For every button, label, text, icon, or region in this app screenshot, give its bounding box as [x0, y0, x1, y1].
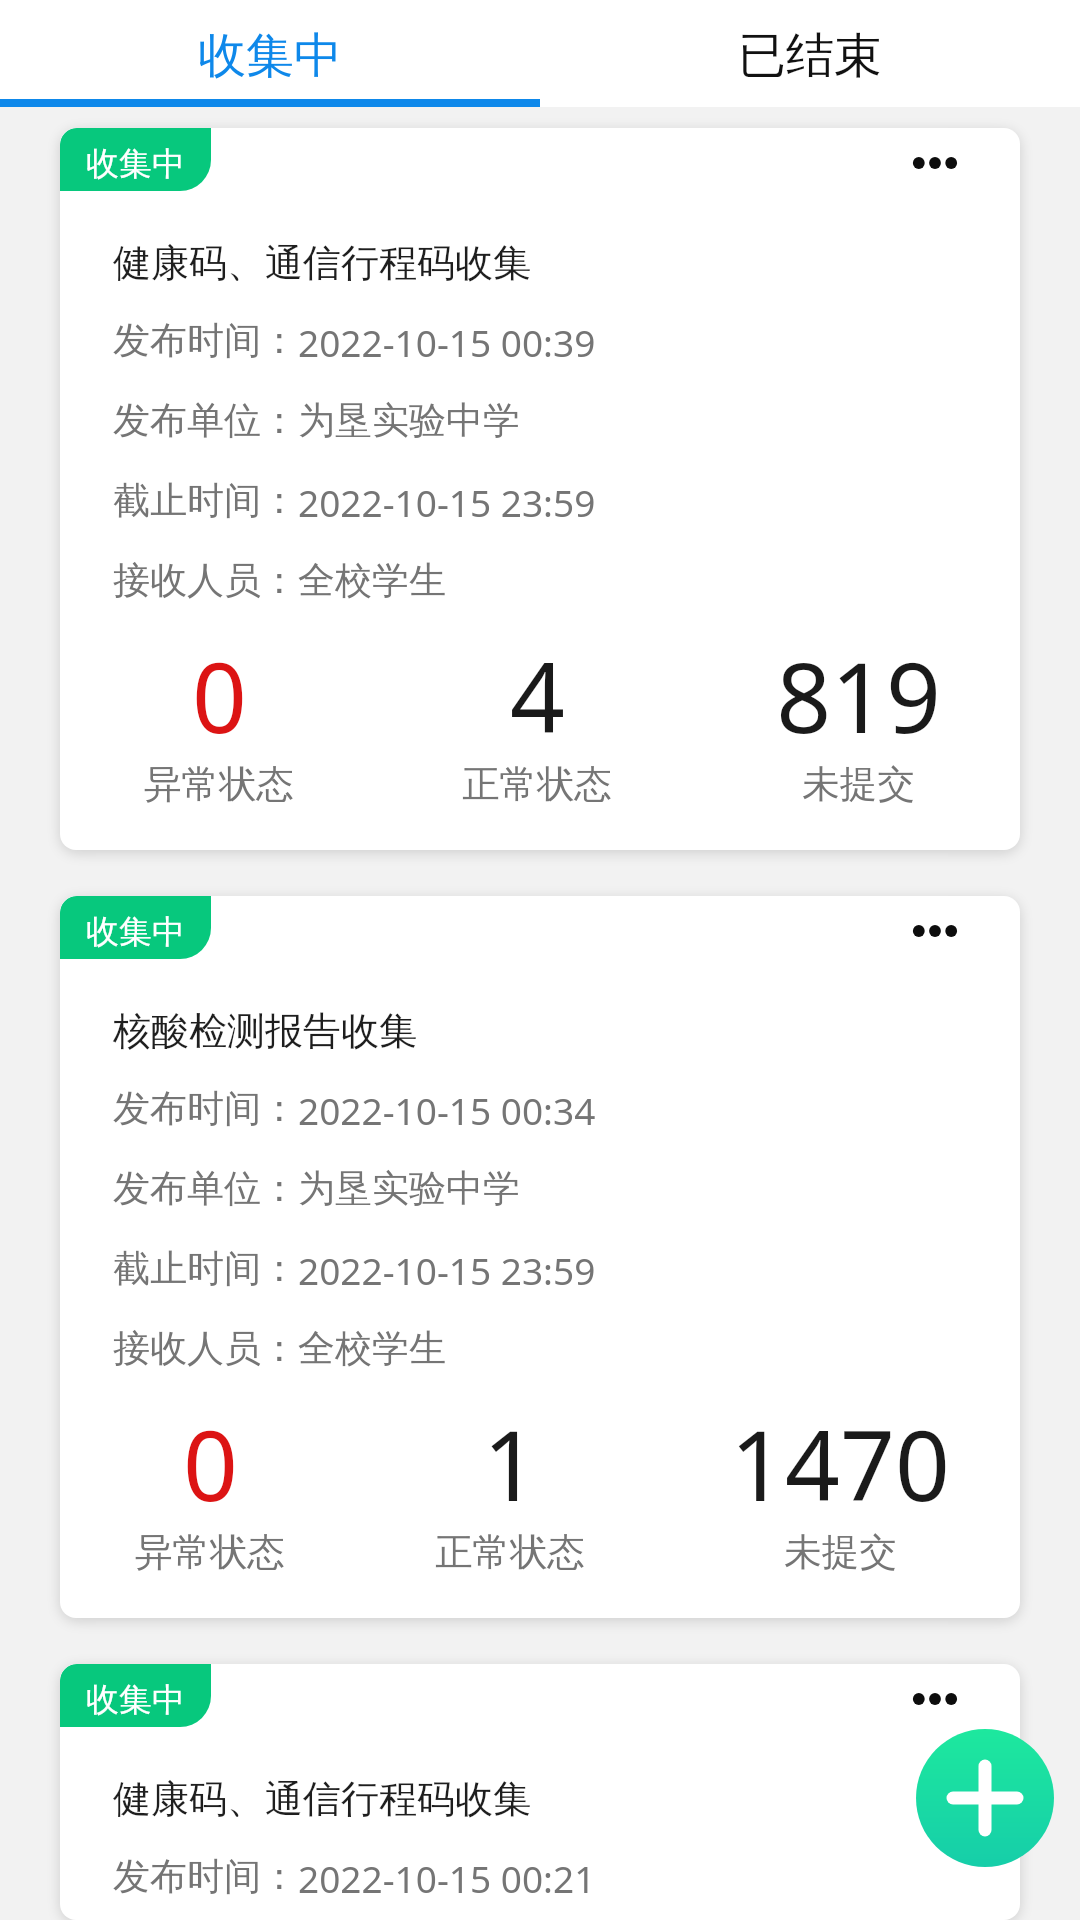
staticText: 发布时间： — [113, 1085, 298, 1132]
staticText: 健康码、通信行程码收集 — [113, 239, 531, 287]
staticText: 0 — [192, 630, 247, 761]
staticText: 核酸检测报告收集 — [113, 1007, 417, 1055]
staticText: 健康码、通信行程码收集 — [113, 1775, 531, 1823]
staticText: 发布时间： — [113, 317, 298, 364]
staticText: 未提交 — [784, 1529, 897, 1576]
staticText: 异常状态 — [135, 1529, 285, 1576]
staticText: 1470 — [730, 1398, 950, 1529]
staticText: 为垦实验中学 — [298, 1165, 520, 1212]
staticText: 正常状态 — [435, 1529, 585, 1576]
staticText: 接收人员： — [113, 1325, 298, 1372]
button[interactable]: 收集中 — [60, 128, 211, 191]
staticText: 发布单位： — [113, 397, 298, 444]
staticText: 2022-10-15 00:34 — [298, 1085, 596, 1135]
staticText: 已结束 — [738, 26, 882, 86]
staticText: 正常状态 — [462, 761, 612, 808]
button[interactable]: Add collection — [916, 1729, 1054, 1867]
staticText: 2022-10-15 23:59 — [298, 1245, 596, 1295]
button[interactable]: 已结束 — [540, 0, 1080, 107]
staticText: 异常状态 — [144, 761, 294, 808]
button[interactable]: 收集中 — [60, 896, 211, 959]
staticText: 截止时间： — [113, 477, 298, 524]
staticText: 收集中 — [198, 26, 342, 86]
staticText: 819 — [776, 630, 941, 761]
staticText: 为垦实验中学 — [298, 397, 520, 444]
staticText: 截止时间： — [113, 1245, 298, 1292]
button[interactable]: 收集中 — [60, 1664, 1020, 1920]
staticText: 4 — [510, 630, 565, 761]
staticText: 接收人员： — [113, 557, 298, 604]
staticText: 2022-10-15 00:21 — [298, 1853, 596, 1903]
button[interactable]: More options — [903, 919, 967, 943]
button[interactable]: 收集中 — [60, 1664, 211, 1727]
button[interactable]: 收集中 — [0, 0, 540, 107]
staticText: 收集中 — [86, 911, 185, 953]
staticText: 发布单位： — [113, 1165, 298, 1212]
staticText: 2022-10-15 00:39 — [298, 317, 596, 367]
staticText: 收集中 — [86, 1679, 185, 1721]
staticText: 发布时间： — [113, 1853, 298, 1900]
staticText: 全校学生 — [298, 557, 446, 604]
button[interactable]: More options — [903, 151, 967, 175]
button[interactable]: 收集中 — [60, 128, 1020, 850]
button[interactable]: 收集中 — [60, 896, 1020, 1618]
staticText: 1 — [483, 1398, 538, 1529]
staticText: 未提交 — [802, 761, 915, 808]
staticText: 收集中 — [86, 143, 185, 185]
staticText: 2022-10-15 23:59 — [298, 477, 596, 527]
staticText: 0 — [183, 1398, 238, 1529]
button[interactable]: More options — [903, 1687, 967, 1711]
staticText: 全校学生 — [298, 1325, 446, 1372]
